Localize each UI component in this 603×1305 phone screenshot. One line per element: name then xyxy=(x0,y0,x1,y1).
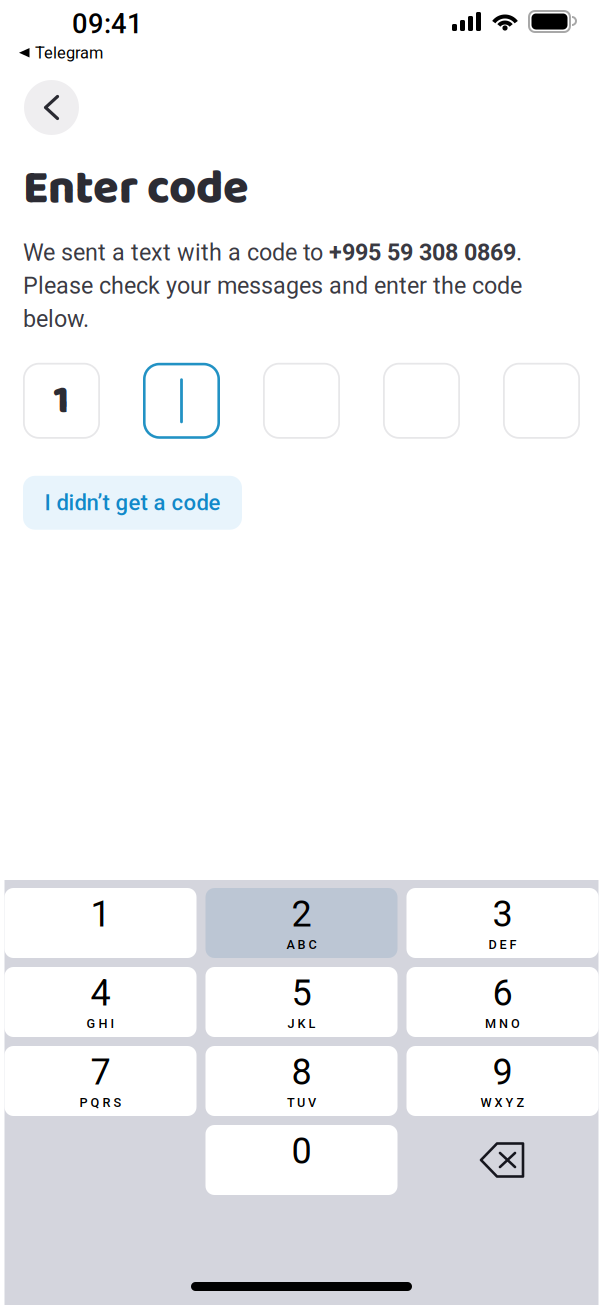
button[interactable]: 9 xyxy=(406,1046,598,1116)
staticText: 8 xyxy=(291,1051,311,1093)
staticText: 7 xyxy=(90,1051,110,1093)
button[interactable]: Code digit xyxy=(383,363,460,439)
button[interactable]: 1 xyxy=(4,888,196,958)
button[interactable]: Code digit xyxy=(143,363,220,439)
staticText: G H I xyxy=(86,1016,114,1031)
staticText: T U V xyxy=(287,1095,316,1110)
staticText: 09:41 xyxy=(72,8,143,40)
button[interactable]: 4 xyxy=(4,967,196,1037)
staticText: I didn’t get a code xyxy=(44,490,220,516)
staticText: 2 xyxy=(291,893,311,935)
button[interactable]: 0 xyxy=(205,1125,397,1195)
button[interactable]: 6 xyxy=(406,967,598,1037)
staticText: P Q R S xyxy=(79,1095,121,1110)
button[interactable]: 8 xyxy=(205,1046,397,1116)
button[interactable]: I didn’t get a code xyxy=(23,476,242,530)
button[interactable]: Code digit xyxy=(263,363,340,439)
button[interactable]: Code digit xyxy=(503,363,580,439)
staticText: 1 xyxy=(53,369,69,433)
staticText: J K L xyxy=(287,1016,315,1031)
staticText: W X Y Z xyxy=(480,1095,524,1110)
staticText: We sent a text with a code to +995 59 30… xyxy=(23,239,522,333)
staticText: 3 xyxy=(492,893,512,935)
button[interactable]: Delete xyxy=(406,1125,598,1195)
button[interactable]: Telegram xyxy=(19,43,103,63)
button[interactable]: 7 xyxy=(4,1046,196,1116)
staticText: M N O xyxy=(485,1016,520,1031)
staticText: 1 xyxy=(90,893,110,935)
staticText: 4 xyxy=(90,972,110,1014)
staticText: 9 xyxy=(492,1051,512,1093)
staticText: A B C xyxy=(286,937,316,952)
button[interactable]: 1 xyxy=(23,363,100,439)
staticText: D E F xyxy=(488,937,516,952)
button[interactable]: 5 xyxy=(205,967,397,1037)
staticText: Enter code xyxy=(23,152,249,227)
staticText: 6 xyxy=(492,972,512,1014)
staticText: 0 xyxy=(291,1130,311,1172)
button[interactable]: 3 xyxy=(406,888,598,958)
staticText: 5 xyxy=(291,972,311,1014)
staticText: Telegram xyxy=(35,43,103,63)
button[interactable]: Back xyxy=(24,80,79,135)
button[interactable]: 2 xyxy=(205,888,397,958)
